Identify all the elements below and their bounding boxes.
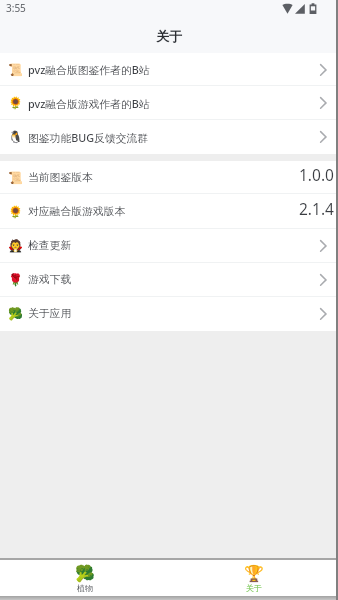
staticText: 关于应用 xyxy=(28,307,72,321)
staticText: 关于 xyxy=(156,28,182,44)
staticText: 3:55 xyxy=(6,1,26,15)
staticText: 🌻 xyxy=(8,205,23,219)
staticText: pvz融合版图鉴作者的B站 xyxy=(28,62,150,77)
button[interactable]: 🏆 xyxy=(169,560,338,596)
staticText: 📜 xyxy=(8,171,23,185)
staticText: 检查更新 xyxy=(28,239,72,253)
staticText: 当前图鉴版本 xyxy=(28,171,93,185)
button[interactable]: 🐧 xyxy=(0,120,338,154)
staticText: 🌻 xyxy=(8,96,23,110)
staticText: 对应融合版游戏版本 xyxy=(28,205,126,219)
button[interactable]: 📜 xyxy=(0,161,338,194)
button[interactable]: 📜 xyxy=(0,53,338,86)
button[interactable]: 🌻 xyxy=(0,86,338,120)
staticText: 🥦 xyxy=(8,307,23,321)
staticText: pvz融合版游戏作者的B站 xyxy=(28,96,150,111)
staticText: 2.1.4 xyxy=(299,198,334,219)
staticText: 🏆 xyxy=(244,564,264,583)
staticText: 游戏下载 xyxy=(28,273,72,287)
staticText: 🧛 xyxy=(8,239,23,253)
staticText: 📜 xyxy=(8,63,23,77)
staticText: 🐧 xyxy=(8,130,23,144)
staticText: 1.0.0 xyxy=(299,164,334,185)
staticText: 植物 xyxy=(77,583,93,593)
staticText: 关于 xyxy=(246,583,262,593)
button[interactable]: 🥦 xyxy=(0,297,338,331)
staticText: 🥦 xyxy=(75,564,95,583)
button[interactable]: 🥦 xyxy=(0,560,169,596)
staticText: 图鉴功能BUG反馈交流群 xyxy=(28,130,149,145)
button[interactable]: 🌻 xyxy=(0,194,338,229)
button[interactable]: 🌹 xyxy=(0,263,338,297)
staticText: 🌹 xyxy=(8,273,23,287)
button[interactable]: 🧛 xyxy=(0,229,338,263)
